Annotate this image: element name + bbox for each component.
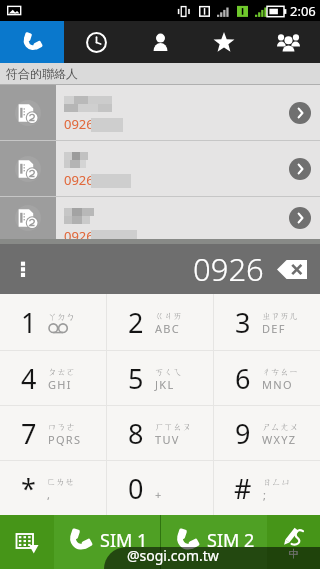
button[interactable]: 7 xyxy=(0,406,106,460)
button[interactable]: 0926 xyxy=(0,141,320,196)
staticText: ; xyxy=(263,487,268,502)
button[interactable]: 5 xyxy=(107,351,213,405)
button[interactable]: Backspace xyxy=(277,260,307,279)
staticText: JKL xyxy=(155,377,175,392)
button[interactable]: Contact details xyxy=(289,158,311,180)
button[interactable]: 0 xyxy=(107,461,213,515)
button[interactable]: Dialer xyxy=(0,21,64,63)
button[interactable]: Contacts xyxy=(128,21,192,63)
staticText: * xyxy=(21,470,36,507)
staticText: 6 xyxy=(235,360,251,397)
button[interactable]: SIM 1 xyxy=(54,515,160,569)
staticText: DEF xyxy=(262,321,286,336)
button[interactable]: 8 xyxy=(107,406,213,460)
staticText: PQRS xyxy=(48,432,82,447)
staticText: 0926 xyxy=(64,115,94,133)
staticText: 2:06 xyxy=(290,2,316,20)
button[interactable]: Groups xyxy=(256,21,320,63)
button[interactable]: 9 xyxy=(214,406,320,460)
staticText: 7 xyxy=(21,415,37,452)
staticText: 0926 xyxy=(64,171,94,189)
button[interactable]: 0926 xyxy=(0,85,320,140)
staticText: 8 xyxy=(128,415,144,452)
button[interactable]: Call history xyxy=(64,21,128,63)
button[interactable]: Favourites xyxy=(192,21,256,63)
button[interactable]: * xyxy=(0,461,106,515)
staticText: 中 xyxy=(289,547,299,560)
staticText: , xyxy=(47,487,52,502)
button[interactable]: SIM 2 xyxy=(161,515,267,569)
button[interactable]: Hide keypad xyxy=(0,515,54,569)
button[interactable]: 3 xyxy=(214,294,320,350)
staticText: 0926 xyxy=(193,248,264,290)
staticText: ㄍㄐㄞ xyxy=(155,310,183,321)
staticText: 1 xyxy=(21,304,37,341)
button[interactable]: 6 xyxy=(214,351,320,405)
staticText: ㄇㄋㄜ xyxy=(48,421,76,432)
button[interactable]: # xyxy=(214,461,320,515)
staticText: ABC xyxy=(155,321,181,336)
button[interactable]: Contact details xyxy=(289,207,311,229)
button[interactable]: 2 xyxy=(107,294,213,350)
staticText: 符合的聯絡人 xyxy=(6,66,78,81)
button[interactable]: More options xyxy=(12,258,34,280)
button[interactable]: 4 xyxy=(0,351,106,405)
button[interactable]: 0926 xyxy=(0,197,320,239)
staticText: 9 xyxy=(235,415,251,452)
staticText: GHI xyxy=(48,377,72,392)
staticText: @sogi.com.tw xyxy=(127,547,219,565)
staticText: ㄈㄌㄝ xyxy=(47,476,75,487)
staticText: 4 xyxy=(21,360,37,397)
button[interactable]: Switch input method xyxy=(267,515,320,569)
staticText: ㄆㄊㄛ xyxy=(48,366,76,377)
staticText: SIM 1 xyxy=(100,528,148,553)
staticText: MNO xyxy=(262,377,293,392)
staticText: TUV xyxy=(155,432,180,447)
button[interactable]: Contact details xyxy=(289,102,311,124)
staticText: ㄓㄗㄞㄦ xyxy=(262,310,299,321)
staticText: 5 xyxy=(128,360,144,397)
staticText: SIM 2 xyxy=(207,528,255,553)
staticText: + xyxy=(155,487,163,502)
button[interactable]: 1 xyxy=(0,294,106,350)
staticText: WXYZ xyxy=(262,432,297,447)
staticText: 2 xyxy=(128,304,144,341)
staticText: 3 xyxy=(235,304,251,341)
staticText: 0926 xyxy=(64,227,94,239)
staticText: ㄔㄘㄠㄧ xyxy=(262,366,299,377)
staticText: # xyxy=(234,470,252,507)
staticText: ㄚㄉㄅ xyxy=(48,311,76,322)
staticText: ㄕㄙㄤㄨ xyxy=(262,421,299,432)
staticText: ㄏㄒㄠㄡ xyxy=(155,421,192,432)
staticText: ㄎㄑㄟ xyxy=(155,366,183,377)
staticText: ㄖㄥㄩ xyxy=(263,476,291,487)
staticText: 0 xyxy=(128,470,144,507)
